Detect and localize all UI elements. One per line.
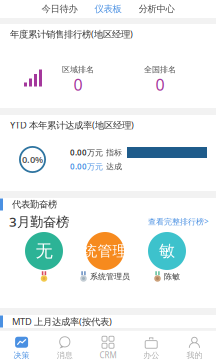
staticText: 敏: [159, 241, 175, 261]
staticText: 系统管理员: [90, 272, 130, 281]
staticText: 仪表板: [94, 3, 121, 15]
button[interactable]: 分析中心: [138, 0, 174, 18]
staticText: CRM: [99, 350, 116, 360]
button[interactable]: 办公: [130, 330, 173, 360]
button[interactable]: 我的: [173, 330, 216, 360]
staticText: 区域排名: [62, 65, 94, 74]
staticText: 0.00万元: [70, 147, 103, 158]
button[interactable]: CRM: [86, 330, 130, 360]
staticText: 分析中心: [138, 3, 174, 15]
staticText: 无: [35, 240, 52, 262]
staticText: 陈敏: [164, 272, 180, 281]
button[interactable]: 查看完整排行榜>: [148, 216, 216, 227]
staticText: 0: [155, 74, 164, 95]
button[interactable]: 仪表板: [94, 0, 121, 18]
staticText: 0.0%: [22, 153, 43, 166]
staticText: 年度累计销售排行榜(地区经理): [10, 28, 133, 40]
staticText: 决策: [14, 350, 30, 360]
staticText: 0.00万元: [70, 161, 103, 172]
staticText: MTD 上月达成率(按代表): [12, 315, 112, 328]
staticText: 全国排名: [144, 65, 176, 74]
staticText: 我的: [186, 350, 202, 360]
staticText: 0: [73, 74, 82, 95]
staticText: 代表勤奋榜: [12, 199, 57, 210]
button[interactable]: 消息: [43, 330, 86, 360]
staticText: 查看完整排行榜>: [148, 216, 209, 227]
staticText: 消息: [57, 350, 73, 360]
staticText: 3月勤奋榜: [9, 213, 69, 230]
button[interactable]: 决策: [0, 330, 43, 360]
staticText: 指标: [106, 148, 122, 157]
staticText: 今日待办: [41, 3, 77, 15]
staticText: 达成: [106, 162, 122, 171]
staticText: 办公: [143, 350, 159, 360]
staticText: YTD 本年累计达成率(地区经理): [10, 119, 134, 131]
staticText: 统管理: [82, 242, 127, 260]
button[interactable]: 今日待办: [41, 0, 77, 18]
